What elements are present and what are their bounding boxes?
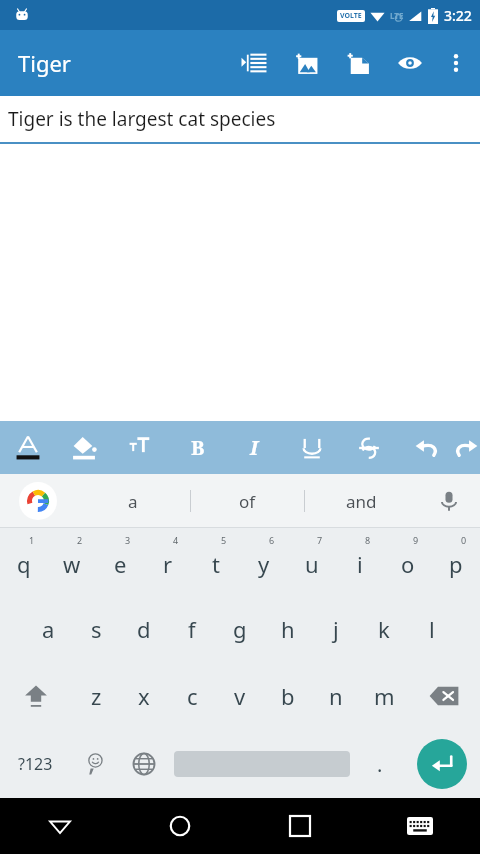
button[interactable]: Keyboard — [360, 798, 480, 854]
button[interactable]: Preview — [384, 30, 436, 96]
staticText: y — [258, 549, 270, 579]
button[interactable]: 8 — [336, 528, 384, 595]
staticText: c — [187, 681, 198, 711]
staticText: n — [329, 681, 343, 711]
staticText: o — [401, 549, 415, 579]
button[interactable]: a — [24, 595, 72, 662]
button[interactable]: Highlight color — [56, 421, 112, 474]
button[interactable]: a — [76, 474, 190, 528]
staticText: 9 — [413, 534, 419, 546]
staticText: a — [128, 490, 138, 513]
button[interactable]: Backspace — [408, 662, 480, 730]
button[interactable]: ?123 — [0, 730, 70, 798]
staticText: 8 — [365, 534, 371, 546]
staticText: and — [346, 490, 377, 513]
staticText: B — [191, 434, 205, 461]
button[interactable]: c — [168, 662, 216, 730]
button[interactable]: x — [120, 662, 168, 730]
staticText: x — [138, 681, 150, 711]
button[interactable]: 7 — [288, 528, 336, 595]
staticText: 3 — [125, 534, 131, 546]
button[interactable]: b — [264, 662, 312, 730]
staticText: a — [42, 614, 55, 644]
staticText: LTE — [390, 10, 404, 21]
button[interactable]: Enter — [404, 730, 480, 798]
staticText: 1 — [29, 534, 35, 546]
button[interactable]: Emoji — [70, 730, 119, 798]
button[interactable]: Google — [0, 474, 76, 528]
button[interactable]: d — [120, 595, 168, 662]
button[interactable]: Space — [168, 730, 355, 798]
staticText: 3:22 — [444, 6, 472, 25]
staticText: z — [91, 681, 102, 711]
staticText: Tiger is the largest cat species — [8, 106, 276, 132]
button[interactable]: 4 — [144, 528, 192, 595]
staticText: VOLTE — [340, 11, 362, 21]
staticText: k — [378, 614, 390, 644]
staticText: q — [17, 549, 31, 579]
button[interactable]: Voice input — [418, 474, 480, 528]
button[interactable]: Tiger is the largest cat species — [0, 96, 480, 142]
button[interactable]: . — [355, 730, 404, 798]
staticText: d — [137, 614, 151, 644]
staticText: ?123 — [18, 753, 53, 775]
button[interactable]: z — [72, 662, 120, 730]
staticText: v — [234, 681, 246, 711]
staticText: 4 — [173, 534, 179, 546]
staticText: w — [63, 549, 81, 579]
button[interactable]: 3 — [96, 528, 144, 595]
staticText: . — [377, 751, 383, 778]
button[interactable]: s — [72, 595, 120, 662]
staticText: 7 — [317, 534, 323, 546]
staticText: m — [374, 681, 395, 711]
button[interactable]: Underline — [283, 421, 340, 474]
button[interactable]: 1 — [0, 528, 48, 595]
button[interactable]: Shift — [0, 662, 72, 730]
button[interactable]: Text color — [0, 421, 56, 474]
button[interactable]: Font size — [112, 421, 169, 474]
staticText: i — [357, 549, 363, 579]
button[interactable]: k — [360, 595, 408, 662]
button[interactable]: m — [360, 662, 408, 730]
button[interactable]: Indent — [228, 30, 280, 96]
button[interactable]: j — [312, 595, 360, 662]
button[interactable]: n — [312, 662, 360, 730]
staticText: 0 — [461, 534, 467, 546]
button[interactable]: 5 — [192, 528, 240, 595]
staticText: Tiger — [18, 48, 228, 78]
button[interactable]: l — [408, 595, 456, 662]
staticText: of — [239, 490, 256, 513]
button[interactable]: 6 — [240, 528, 288, 595]
button[interactable]: Back — [0, 798, 120, 854]
button[interactable]: h — [264, 595, 312, 662]
button[interactable]: Home — [120, 798, 240, 854]
button[interactable]: 2 — [48, 528, 96, 595]
staticText: e — [114, 549, 127, 579]
button[interactable]: Change language — [119, 730, 168, 798]
button[interactable]: v — [216, 662, 264, 730]
button[interactable]: Undo — [397, 421, 454, 474]
staticText: 5 — [221, 534, 227, 546]
staticText: I — [250, 434, 259, 461]
button[interactable]: 0 — [432, 528, 480, 595]
button[interactable]: f — [168, 595, 216, 662]
button[interactable]: of — [191, 474, 304, 528]
button[interactable]: and — [305, 474, 418, 528]
button[interactable]: Italic — [226, 421, 283, 474]
staticText: j — [333, 614, 339, 644]
button[interactable]: More options — [436, 30, 476, 96]
button[interactable]: Bold — [169, 421, 226, 474]
staticText: s — [91, 614, 102, 644]
staticText: r — [163, 549, 173, 579]
button[interactable]: 9 — [384, 528, 432, 595]
staticText: h — [281, 614, 295, 644]
staticText: f — [188, 614, 196, 644]
button[interactable]: Recent apps — [240, 798, 360, 854]
staticText: l — [429, 614, 435, 644]
button[interactable]: Strikethrough — [340, 421, 397, 474]
button[interactable]: Redo — [454, 421, 480, 474]
staticText: t — [212, 549, 220, 579]
button[interactable]: g — [216, 595, 264, 662]
button[interactable]: Add image — [280, 30, 332, 96]
button[interactable]: Add file — [332, 30, 384, 96]
